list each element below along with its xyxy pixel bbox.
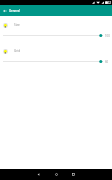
button[interactable]: Back (32, 169, 44, 180)
button[interactable]: Size (0, 20, 112, 43)
button[interactable]: Recent apps (67, 169, 79, 180)
staticText: Size (14, 23, 20, 27)
button[interactable]: Home (50, 169, 62, 180)
staticText: General (9, 9, 20, 13)
staticText: Grid (14, 49, 21, 53)
staticText: 60 (105, 60, 109, 64)
button[interactable]: Grid (0, 46, 112, 69)
staticText: 4:02 (105, 1, 111, 5)
button[interactable]: Navigate up (0, 5, 10, 16)
staticText: 100 (105, 34, 110, 38)
